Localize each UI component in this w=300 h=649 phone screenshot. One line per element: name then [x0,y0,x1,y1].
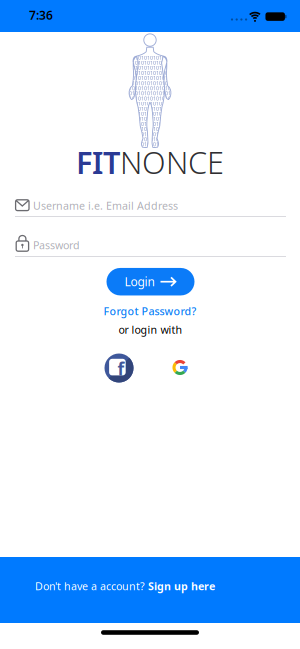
staticText: 0101010101010101 [126,125,174,133]
staticText: Login [124,274,154,290]
staticText: 1010101010101010 [126,100,174,107]
staticText: NONCE [120,142,224,182]
staticText: 1010101010101010 [126,59,174,66]
button[interactable]: Forgot Password? [103,304,196,318]
staticText: or login with [118,322,182,337]
staticText: 1010101010101010 [126,90,174,97]
staticText: 0101010101010101 [126,74,174,82]
button[interactable]: Username i.e. Email Address [0,190,300,226]
staticText: 0101010101010101 [126,95,174,102]
staticText: 7:36 [29,7,53,23]
staticText: 0101010101010101 [126,115,174,122]
staticText: Password [33,238,80,252]
staticText: Forgot Password? [103,304,196,318]
staticText: f [117,357,124,380]
staticText: 1010101010101010 [126,141,174,148]
staticText: 0101010101010101 [126,85,174,92]
staticText: 1010101010101010 [126,110,174,117]
staticText: 0101010101010101 [126,136,174,143]
staticText: 1010101010101010 [126,120,174,127]
staticText: Username i.e. Email Address [33,198,178,213]
staticText: 0101010101010101 [126,54,174,61]
button[interactable]: Login [106,268,194,295]
button[interactable] [171,359,188,376]
button[interactable]: f [104,353,134,383]
staticText: 0101010101010101 [126,146,174,153]
staticText: Don't have a account? Sign up here [35,579,215,593]
button[interactable]: Don't have a account? Sign up here [0,557,300,623]
staticText: FIT [76,142,120,182]
staticText: 0101010101010101 [126,64,174,71]
staticText: 1010101010101010 [126,131,174,138]
button[interactable]: Password [0,230,300,266]
staticText: 1010101010101010 [126,69,174,76]
staticText: 1010101010101010 [126,80,174,87]
staticText: 0101010101010101 [126,105,174,112]
